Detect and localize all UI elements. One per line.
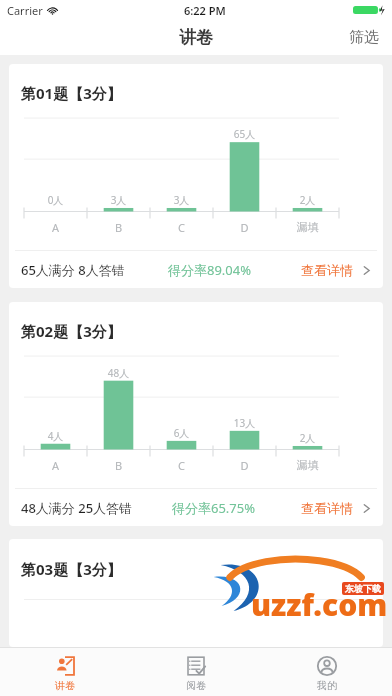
button[interactable]: 第03题【3分】 — [9, 539, 383, 647]
staticText: C — [150, 220, 213, 235]
staticText: 4人 — [24, 429, 87, 443]
staticText: 讲卷 — [55, 679, 75, 692]
staticText: 第01题【3分】 — [21, 83, 122, 103]
staticText: 2人 — [276, 193, 339, 207]
staticText: 筛选 — [349, 28, 379, 47]
staticText: 漏填 — [276, 220, 339, 234]
staticText: 东坡下载 — [345, 583, 381, 594]
staticText: 得分率65.75% — [172, 499, 256, 517]
staticText: 65人 — [213, 127, 276, 141]
staticText: A — [24, 220, 87, 235]
staticText: A — [24, 458, 87, 473]
staticText: 第03题【3分】 — [21, 559, 122, 579]
staticText: B — [87, 458, 150, 473]
staticText: 48人满分 25人答错 — [21, 499, 133, 517]
staticText: 2人 — [276, 431, 339, 445]
staticText: 讲卷 — [179, 27, 213, 48]
button[interactable]: 第02题【3分】 — [9, 302, 383, 526]
staticText: 查看详情 — [301, 500, 353, 516]
staticText: C — [150, 458, 213, 473]
button[interactable]: 我的 — [261, 648, 392, 696]
staticText: D — [213, 220, 276, 235]
button[interactable]: 第01题【3分】 — [9, 64, 383, 288]
button[interactable]: 筛选 — [336, 20, 392, 55]
staticText: 6:22 PM — [184, 3, 226, 18]
button[interactable]: 阅卷 — [130, 648, 261, 696]
staticText: 13人 — [213, 416, 276, 430]
staticText: 3人 — [87, 193, 150, 207]
staticText: 65人满分 8人答错 — [21, 261, 125, 279]
staticText: uzzf.com — [251, 584, 388, 625]
staticText: 6人 — [150, 426, 213, 440]
staticText: Carrier — [7, 3, 43, 18]
button[interactable]: 查看详情 — [301, 262, 372, 278]
staticText: 0人 — [24, 193, 87, 207]
staticText: 得分率89.04% — [168, 261, 252, 279]
staticText: 3人 — [150, 193, 213, 207]
staticText: D — [213, 458, 276, 473]
button[interactable]: 查看详情 — [301, 500, 372, 516]
staticText: 48人 — [87, 366, 150, 380]
staticText: 第02题【3分】 — [21, 321, 122, 341]
button[interactable]: 讲卷 — [0, 648, 130, 696]
staticText: 漏填 — [276, 458, 339, 472]
staticText: 我的 — [317, 679, 337, 692]
staticText: 查看详情 — [301, 262, 353, 278]
staticText: B — [87, 220, 150, 235]
staticText: 阅卷 — [186, 679, 206, 692]
